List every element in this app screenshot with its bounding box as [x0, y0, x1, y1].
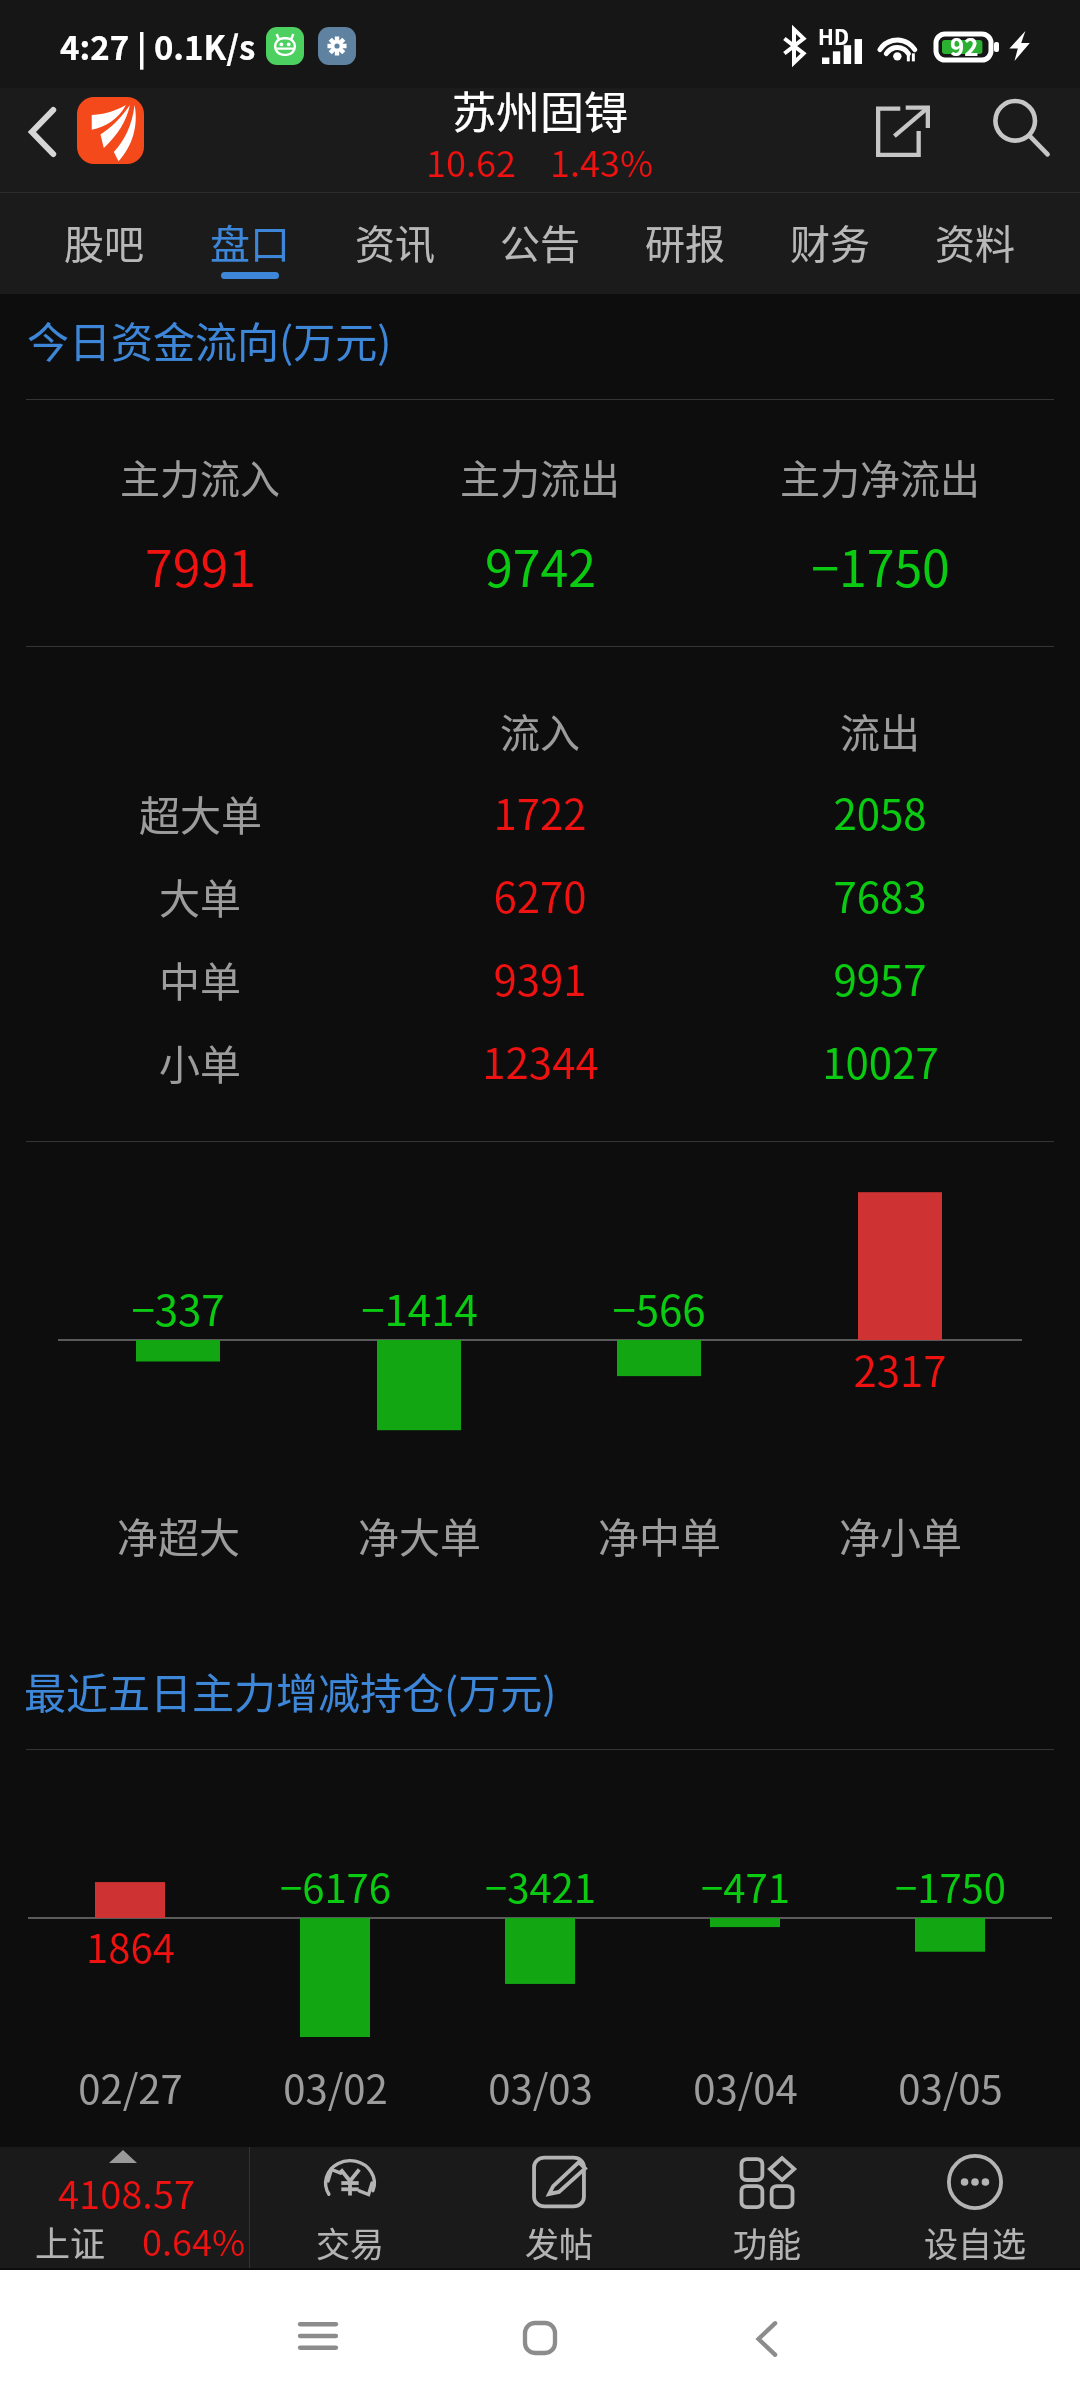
- staticText: 4108.57: [58, 2165, 196, 2220]
- staticText: 02/27: [78, 2058, 183, 2116]
- staticText: −1750: [811, 529, 950, 601]
- staticText: −1750: [895, 1857, 1006, 1915]
- staticText: 资料: [935, 213, 1015, 271]
- staticText: 净超大: [117, 1505, 240, 1564]
- staticText: 9742: [485, 529, 596, 601]
- staticText: HD: [818, 21, 849, 51]
- staticText: 03/05: [898, 2058, 1003, 2116]
- button[interactable]: Eastmoney home: [77, 97, 144, 164]
- staticText: 4:27 | 0.1K/s: [60, 22, 256, 70]
- staticText: 12344: [482, 1030, 599, 1091]
- staticText: 净小单: [839, 1505, 962, 1564]
- staticText: 资讯: [355, 213, 435, 271]
- staticText: 1.43%: [550, 135, 654, 187]
- staticText: −6176: [280, 1857, 391, 1915]
- staticText: 最近五日主力增减持仓(万元): [24, 1660, 557, 1721]
- staticText: 2317: [853, 1338, 947, 1399]
- staticText: 9957: [833, 947, 927, 1008]
- staticText: 盘口: [210, 213, 290, 271]
- button[interactable]: Search: [975, 83, 1065, 173]
- button[interactable]: 发帖: [459, 2147, 659, 2268]
- button[interactable]: 公告: [470, 192, 610, 294]
- staticText: 10027: [822, 1030, 939, 1091]
- button[interactable]: 资讯: [325, 192, 465, 294]
- staticText: 6270: [493, 864, 587, 925]
- staticText: 上证: [35, 2216, 106, 2267]
- staticText: 主力净流出: [780, 448, 980, 506]
- staticText: 中单: [159, 949, 241, 1008]
- button[interactable]: 盘口: [180, 192, 320, 294]
- staticText: 1722: [493, 781, 587, 842]
- staticText: 小单: [159, 1032, 241, 1091]
- staticText: 10.62: [426, 135, 516, 187]
- staticText: 设自选: [924, 2218, 1026, 2267]
- button[interactable]: 设自选: [875, 2147, 1075, 2268]
- staticText: −337: [131, 1277, 225, 1338]
- staticText: 03/03: [488, 2058, 593, 2116]
- staticText: 大单: [159, 866, 241, 925]
- staticText: 今日资金流向(万元): [27, 309, 392, 370]
- button[interactable]: Recents: [258, 2271, 378, 2400]
- staticText: 流出: [840, 702, 920, 760]
- button[interactable]: Back: [4, 94, 80, 170]
- staticText: 净大单: [358, 1505, 481, 1564]
- staticText: 净中单: [598, 1505, 721, 1564]
- staticText: −471: [701, 1857, 790, 1915]
- staticText: 7991: [145, 529, 256, 601]
- staticText: −566: [612, 1277, 706, 1338]
- button[interactable]: Back: [706, 2274, 826, 2400]
- button[interactable]: 股吧: [34, 192, 174, 294]
- staticText: 交易: [316, 2218, 384, 2267]
- staticText: 功能: [733, 2218, 801, 2267]
- staticText: 9391: [493, 947, 587, 1008]
- staticText: 主力流入: [120, 448, 280, 506]
- staticText: 主力流出: [460, 448, 620, 506]
- staticText: 03/02: [283, 2058, 388, 2116]
- button[interactable]: 财务: [760, 192, 900, 294]
- staticText: 2058: [833, 781, 927, 842]
- button[interactable]: Home: [480, 2273, 600, 2400]
- staticText: −1414: [361, 1277, 478, 1338]
- button[interactable]: 交易: [250, 2147, 450, 2268]
- staticText: 发帖: [525, 2218, 593, 2267]
- staticText: 92: [950, 28, 979, 63]
- staticText: −3421: [485, 1857, 596, 1915]
- button[interactable]: 资料: [905, 192, 1045, 294]
- button[interactable]: Share: [858, 86, 948, 176]
- staticText: 苏州固锝: [452, 78, 628, 142]
- button[interactable]: 功能: [667, 2147, 867, 2268]
- staticText: 1864: [86, 1917, 175, 1975]
- staticText: 超大单: [139, 783, 262, 842]
- staticText: 7683: [833, 864, 927, 925]
- staticText: 流入: [500, 702, 580, 760]
- button[interactable]: 研报: [615, 192, 755, 294]
- staticText: 03/04: [693, 2058, 798, 2116]
- staticText: 股吧: [64, 213, 144, 271]
- button[interactable]: 4108.57: [0, 2147, 249, 2268]
- staticText: 公告: [500, 213, 580, 271]
- staticText: 财务: [790, 213, 870, 271]
- staticText: 研报: [645, 213, 725, 271]
- staticText: 0.64%: [142, 2214, 246, 2266]
